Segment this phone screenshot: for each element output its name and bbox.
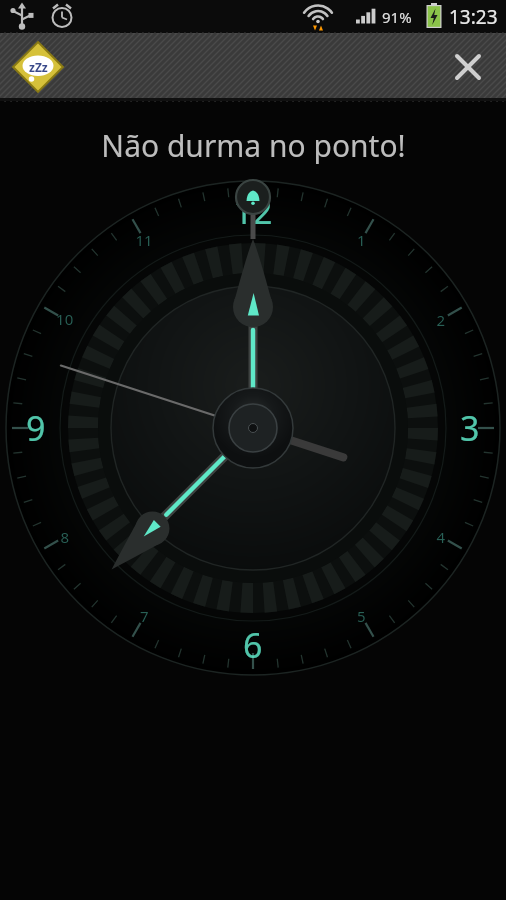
staticText: zZz	[29, 59, 48, 75]
button[interactable]: Close	[442, 41, 494, 93]
button[interactable]: Alarm clock face	[0, 174, 506, 900]
staticText: Não durma no ponto!	[101, 125, 406, 166]
button[interactable]: App icon	[12, 41, 64, 93]
